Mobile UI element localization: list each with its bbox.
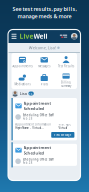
staticText: Billing Summary (61, 81, 71, 88)
button[interactable]: Test Results (55, 53, 77, 71)
staticText: Appointment Scheduled (23, 101, 51, 111)
staticText: Appointments (12, 64, 32, 68)
staticText: Lisa (20, 91, 27, 96)
button[interactable]: Account (68, 33, 77, 39)
staticText: Appointment Scheduled (23, 145, 51, 155)
staticText: Scheduling Office Staff (23, 158, 54, 161)
staticText: Appointment Information (15, 123, 51, 126)
staticText: Welcome, Lisa! (29, 45, 56, 50)
staticText: Scheduling Office Staff (23, 113, 54, 117)
staticText: Messages (38, 64, 50, 68)
button[interactable]: Appointments (11, 53, 33, 71)
staticText: Feb 28 (23, 117, 33, 120)
staticText: Visits (41, 82, 48, 86)
staticText: +2 (29, 92, 33, 95)
button[interactable]: Messages (33, 53, 55, 71)
button[interactable]: Visits (33, 71, 55, 89)
staticText: Well (33, 32, 47, 41)
staticText: HeyerName - Virtual... (15, 126, 44, 130)
button[interactable]: Appointment Scheduled (11, 98, 77, 140)
staticText: Test Results (58, 64, 74, 68)
staticText: Virtual (58, 126, 67, 130)
staticText: View Message (54, 133, 72, 137)
staticText: manage meds & more (17, 13, 71, 20)
button[interactable]: Menu (10, 29, 18, 43)
button[interactable]: Billing Summary (55, 71, 77, 89)
staticText: Feb 28 (23, 161, 33, 165)
button[interactable]: Appointment Scheduled (11, 144, 77, 166)
staticText: Visit Type (58, 123, 71, 126)
button[interactable]: Medications (11, 71, 33, 89)
staticText: See test results, pay bills, (12, 5, 76, 13)
staticText: Medications (14, 82, 30, 86)
button[interactable]: +2 (28, 91, 34, 95)
staticText: Live (19, 32, 33, 41)
